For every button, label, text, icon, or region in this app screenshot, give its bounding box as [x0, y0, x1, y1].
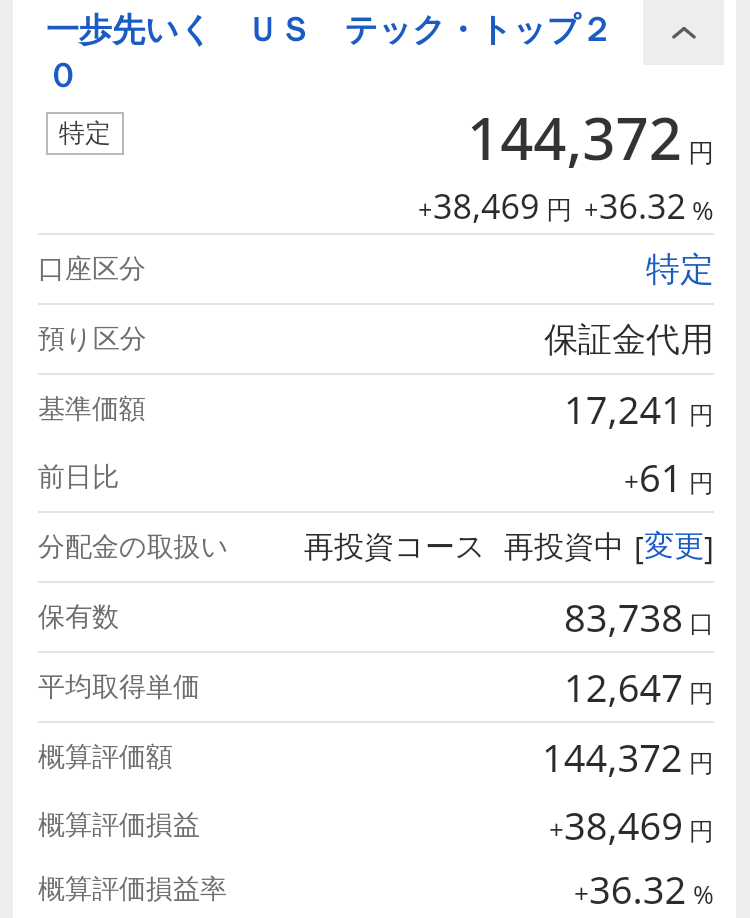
staticText: 36.32: [599, 183, 686, 229]
button[interactable]: 平均取得単価: [38, 653, 714, 721]
button[interactable]: [: [634, 527, 714, 568]
staticText: 基準価額: [38, 392, 146, 426]
staticText: 保有数: [38, 600, 119, 634]
staticText: 144,372: [467, 98, 682, 177]
staticText: [: [634, 527, 644, 568]
staticText: 38,469: [564, 799, 683, 851]
button[interactable]: 概算評価額: [38, 723, 714, 791]
button[interactable]: 基準価額: [38, 375, 714, 443]
staticText: 預り区分: [38, 322, 147, 356]
staticText: 再投資コース: [304, 528, 486, 566]
staticText: ]: [704, 527, 714, 568]
staticText: 61: [639, 451, 683, 503]
staticText: 円: [689, 400, 714, 431]
staticText: 前日比: [38, 460, 119, 494]
staticText: 円: [688, 137, 714, 170]
button[interactable]: 一歩先いく ＵＳ テック・トップ２０ インデックス: [46, 6, 643, 98]
staticText: +: [584, 192, 599, 226]
button[interactable]: 分配金の取扱い: [38, 513, 714, 581]
staticText: 口座区分: [38, 252, 146, 286]
staticText: 概算評価損益: [38, 808, 200, 842]
staticText: 144,372: [542, 731, 683, 783]
button[interactable]: 特定: [59, 117, 111, 150]
staticText: 38,469: [433, 183, 540, 229]
staticText: 保証金代用: [544, 318, 714, 361]
staticText: 概算評価額: [38, 740, 173, 774]
staticText: %: [693, 877, 714, 911]
staticText: %: [692, 192, 714, 227]
staticText: 83,738: [564, 591, 683, 643]
staticText: 12,647: [564, 661, 683, 713]
button[interactable]: 前日比: [38, 443, 714, 511]
staticText: 円: [689, 678, 714, 709]
button[interactable]: 預り区分: [38, 305, 714, 373]
staticText: +: [624, 463, 639, 498]
staticText: 17,241: [564, 383, 683, 435]
staticText: 円: [546, 194, 572, 227]
staticText: 円: [689, 468, 714, 499]
staticText: 円: [689, 816, 714, 847]
staticText: +: [574, 875, 589, 910]
button[interactable]: 概算評価損益率: [38, 859, 714, 918]
staticText: 再投資中: [504, 528, 624, 566]
staticText: 変更: [644, 527, 704, 565]
button[interactable]: 概算評価損益: [38, 791, 714, 859]
staticText: 分配金の取扱い: [38, 530, 229, 564]
staticText: +: [549, 811, 564, 846]
button[interactable]: 口座区分: [38, 235, 714, 303]
staticText: 円: [689, 748, 714, 779]
staticText: 平均取得単価: [38, 670, 200, 704]
button[interactable]: 保有数: [38, 583, 714, 651]
button[interactable]: 特定: [646, 248, 714, 291]
button[interactable]: 折りたたむ: [643, 0, 724, 65]
staticText: 概算評価損益率: [38, 872, 227, 906]
staticText: +: [418, 192, 433, 226]
staticText: 特定: [59, 117, 111, 150]
staticText: 36.32: [589, 863, 687, 915]
staticText: 口: [689, 608, 714, 639]
